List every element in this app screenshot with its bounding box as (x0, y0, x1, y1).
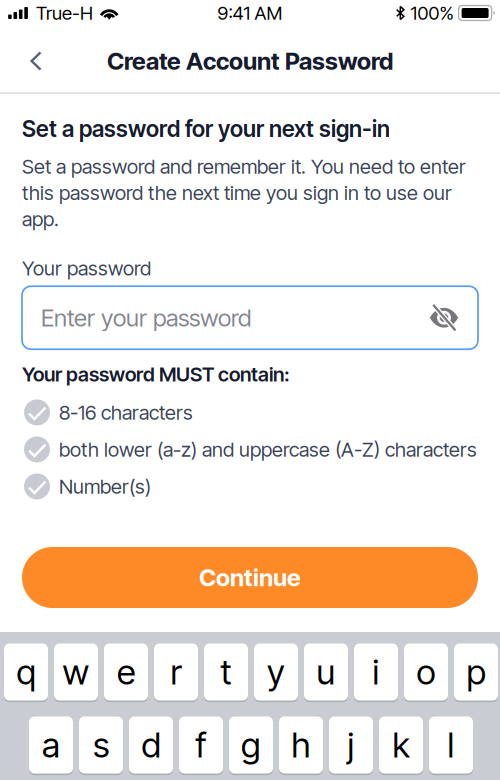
staticText: t (220, 651, 231, 693)
staticText: 9:41 AM (217, 2, 282, 24)
staticText: j (347, 724, 354, 766)
staticText: Create Account Password (107, 46, 393, 75)
button[interactable]: g (229, 716, 273, 774)
button[interactable]: p (454, 643, 498, 701)
button[interactable]: t (204, 643, 248, 701)
staticText: True-H (36, 2, 93, 24)
staticText: Set a password for your next sign-in (22, 115, 390, 142)
staticText: q (16, 651, 35, 693)
staticText: this password the next time you sign in … (22, 181, 452, 205)
button[interactable]: q (4, 643, 48, 701)
staticText: a (42, 724, 60, 766)
staticText: p (466, 651, 485, 693)
staticText: Your password (22, 256, 151, 280)
staticText: Your password MUST contain: (22, 362, 290, 386)
button[interactable]: Show password (424, 298, 464, 338)
staticText: g (241, 724, 261, 766)
button[interactable]: u (304, 643, 348, 701)
staticText: k (392, 724, 409, 766)
staticText: Continue (199, 563, 301, 592)
button[interactable]: s (79, 716, 123, 774)
staticText: u (316, 651, 335, 693)
button[interactable]: l (429, 716, 473, 774)
staticText: i (372, 651, 379, 693)
staticText: 100% (411, 2, 454, 24)
staticText: Enter your password (41, 303, 251, 332)
staticText: e (117, 651, 135, 693)
staticText: 8-16 characters (59, 400, 193, 424)
staticText: d (141, 724, 160, 766)
button[interactable]: h (279, 716, 323, 774)
button[interactable]: a (29, 716, 73, 774)
staticText: app. (22, 207, 59, 231)
staticText: both lower (a-z) and uppercase (A-Z) cha… (59, 437, 477, 461)
staticText: r (170, 651, 181, 693)
staticText: y (267, 651, 285, 693)
staticText: o (416, 651, 435, 693)
button[interactable]: w (54, 643, 98, 701)
button[interactable]: f (179, 716, 223, 774)
button[interactable]: i (354, 643, 398, 701)
button[interactable]: o (404, 643, 448, 701)
staticText: w (62, 651, 89, 693)
button[interactable]: y (254, 643, 298, 701)
staticText: s (93, 724, 109, 766)
button[interactable]: Enter your password (22, 286, 478, 349)
button[interactable]: r (154, 643, 198, 701)
staticText: h (291, 724, 310, 766)
staticText: Number(s) (59, 474, 151, 498)
button[interactable]: Back (12, 36, 60, 82)
staticText: f (195, 724, 206, 766)
button[interactable]: e (104, 643, 148, 701)
button[interactable]: j (329, 716, 373, 774)
button[interactable]: k (379, 716, 423, 774)
button[interactable]: Continue (22, 547, 478, 608)
staticText: Set a password and remember it. You need… (22, 154, 466, 179)
button[interactable]: d (129, 716, 173, 774)
staticText: l (447, 724, 454, 766)
